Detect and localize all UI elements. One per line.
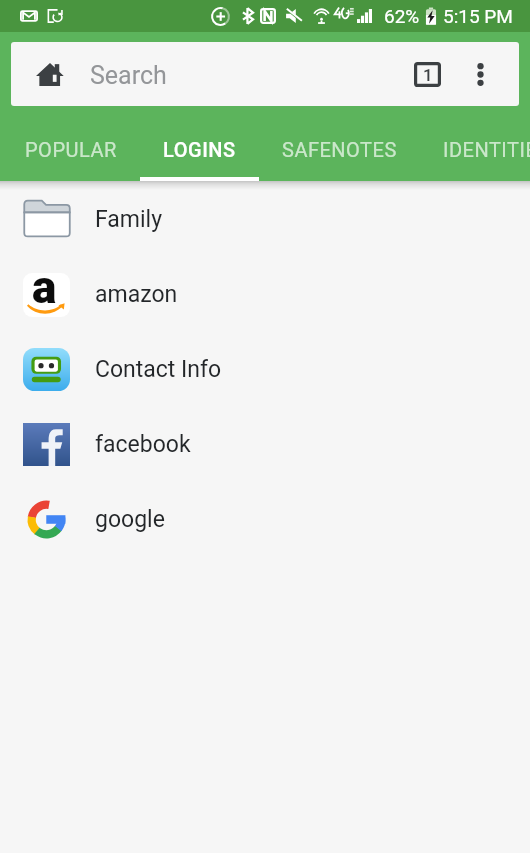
staticText: a (32, 273, 57, 304)
button[interactable]: Contact Info (0, 332, 530, 407)
button[interactable]: Home (22, 42, 78, 106)
staticText: Family (95, 206, 163, 233)
staticText: POPULAR (25, 138, 117, 161)
staticText: google (95, 506, 165, 533)
staticText: IDENTITIES (443, 138, 530, 161)
button[interactable]: facebook (0, 407, 530, 482)
button[interactable]: More options (456, 42, 504, 106)
button[interactable]: Search field (11, 42, 519, 106)
button[interactable]: IDENTITIES (420, 110, 530, 181)
staticText: LOGINS (163, 138, 236, 161)
staticText: Contact Info (95, 356, 222, 383)
staticText: amazon (95, 281, 178, 308)
button[interactable]: google (0, 482, 530, 557)
staticText: facebook (95, 431, 191, 458)
button[interactable]: a (0, 257, 530, 332)
button[interactable]: Open tabs: 1 (399, 42, 455, 106)
button[interactable]: Family (0, 182, 530, 257)
staticText: Search (90, 61, 167, 90)
button[interactable]: SAFENOTES (259, 110, 420, 181)
staticText: 1 (423, 65, 433, 85)
staticText: 62% (384, 5, 420, 27)
staticText: SAFENOTES (282, 138, 397, 161)
button[interactable]: LOGINS (140, 110, 259, 181)
button[interactable]: POPULAR (2, 110, 140, 181)
staticText: 5:15 PM (443, 5, 513, 27)
